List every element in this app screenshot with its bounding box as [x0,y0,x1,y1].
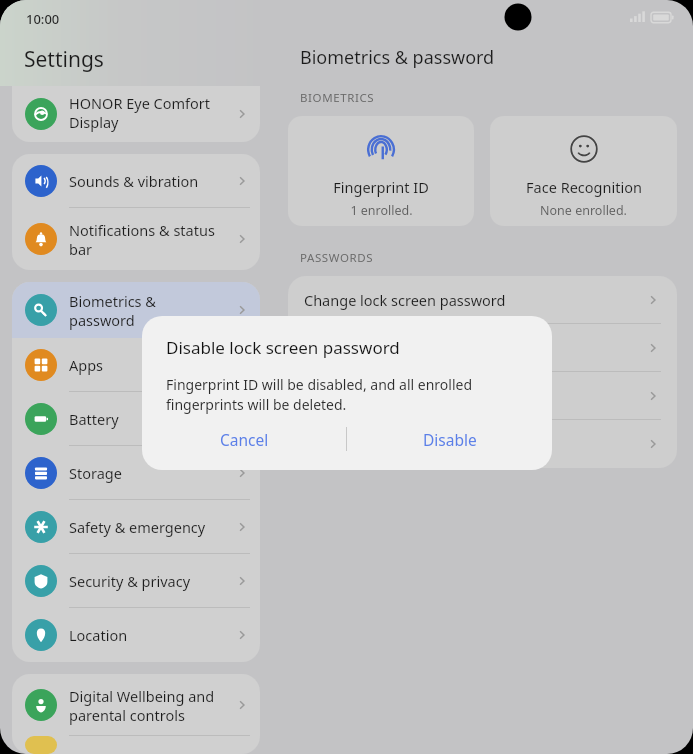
staticText: Digital Wellbeing and parental controls [69,686,234,725]
button[interactable]: Cancel [142,416,346,462]
staticText: Face Recognition [526,177,642,197]
button[interactable]: Digital Wellbeing and parental controls [12,674,260,736]
button[interactable]: Disable lock screen password [288,324,677,372]
staticText: Disable [423,429,477,450]
staticText: HONOR Eye Comfort Display [69,93,234,132]
button[interactable]: Change lock screen password [288,276,677,324]
staticText: 10:00 [26,10,60,28]
button[interactable]: Safety & emergency [12,500,260,554]
staticText: None enrolled. [540,202,627,219]
staticText: 1 enrolled. [350,202,413,219]
staticText: Location [69,625,234,645]
button[interactable]: Location [12,608,260,662]
button[interactable]: Sounds & vibration [12,154,260,208]
staticText: Settings [24,45,104,74]
button[interactable]: Face Recognition [490,116,677,226]
button[interactable]: Notifications & status bar [12,208,260,270]
staticText: Safety & emergency [69,517,234,537]
staticText: Sounds & vibration [69,171,234,191]
staticText: Biometrics & password [300,45,495,70]
staticText: BIOMETRICS [300,90,375,106]
staticText: Disable lock screen password [304,338,645,358]
staticText: Change lock screen password [304,290,645,310]
button[interactable]: Disable [347,416,552,462]
staticText: Apps [69,355,234,375]
staticText: Battery [69,409,234,429]
staticText: Biometrics & password [69,291,234,330]
button[interactable]: Battery [12,392,260,446]
staticText: Cancel [220,429,269,450]
staticText: PASSWORDS [300,250,374,266]
button[interactable]: Fingerprint ID [288,116,474,226]
button[interactable]: Lock screen preferences [288,420,677,468]
button[interactable]: Security & privacy [12,554,260,608]
staticText: Smart Lock [304,386,645,406]
staticText: Storage [69,463,234,483]
staticText: Fingerprint ID [333,177,429,197]
button[interactable]: Smart Lock [288,372,677,420]
button[interactable] [12,736,260,754]
button[interactable]: Storage [12,446,260,500]
staticText: Lock screen preferences [304,434,645,454]
staticText: Security & privacy [69,571,234,591]
staticText: Notifications & status bar [69,220,234,259]
button[interactable]: HONOR Eye Comfort Display [12,86,260,142]
button[interactable]: Apps [12,338,260,392]
button[interactable]: Biometrics & password [12,282,260,338]
staticText: Fingerprint ID will be disabled, and all… [166,375,473,414]
staticText: Disable lock screen password [166,336,400,359]
